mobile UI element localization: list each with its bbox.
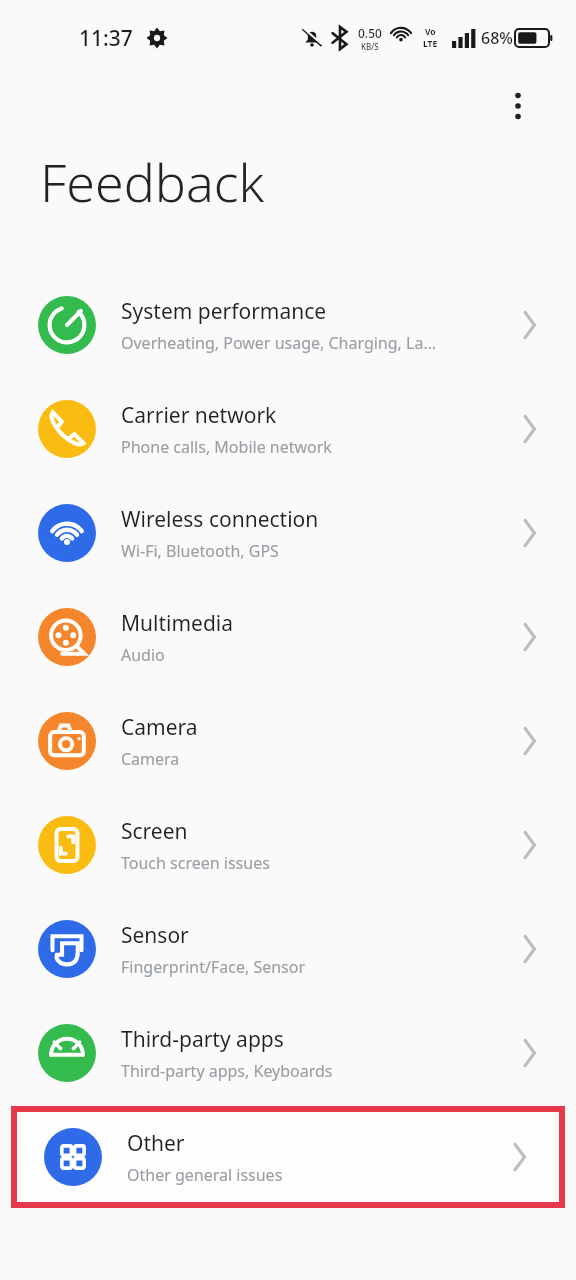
button[interactable]: Carrier network xyxy=(0,377,576,481)
button[interactable]: Sensor xyxy=(0,897,576,1001)
button[interactable]: Other xyxy=(17,1112,559,1202)
button[interactable]: System performance xyxy=(0,273,576,377)
staticText: Phone calls, Mobile network xyxy=(121,436,332,458)
staticText: Touch screen issues xyxy=(121,852,270,874)
staticText: Screen xyxy=(121,817,188,846)
button[interactable]: Third-party apps xyxy=(0,1001,576,1105)
staticText: Camera xyxy=(121,748,180,770)
staticText: Carrier network xyxy=(121,401,277,430)
button[interactable]: Camera xyxy=(0,689,576,793)
staticText: System performance xyxy=(121,297,327,326)
staticText: LTE xyxy=(423,38,438,50)
staticText: Audio xyxy=(121,644,165,666)
staticText: Third-party apps xyxy=(121,1025,284,1054)
staticText: Fingerprint/Face, Sensor xyxy=(121,956,306,978)
staticText: Feedback xyxy=(40,146,265,217)
staticText: Other xyxy=(127,1129,185,1158)
staticText: 11:37 xyxy=(79,24,133,53)
staticText: Third-party apps, Keyboards xyxy=(121,1060,333,1082)
staticText: 0.50 xyxy=(358,25,382,41)
staticText: Other general issues xyxy=(127,1164,283,1186)
staticText: Multimedia xyxy=(121,609,234,638)
staticText: KB/S xyxy=(361,41,379,52)
staticText: Sensor xyxy=(121,921,189,950)
staticText: Wireless connection xyxy=(121,505,319,534)
staticText: Vo xyxy=(425,26,436,38)
staticText: Overheating, Power usage, Charging, La… xyxy=(121,332,437,354)
button[interactable]: Wireless connection xyxy=(0,481,576,585)
button[interactable]: More options xyxy=(496,84,540,128)
button[interactable]: Screen xyxy=(0,793,576,897)
staticText: 68% xyxy=(481,27,513,49)
staticText: Wi-Fi, Bluetooth, GPS xyxy=(121,540,279,562)
staticText: Camera xyxy=(121,713,198,742)
button[interactable]: Multimedia xyxy=(0,585,576,689)
